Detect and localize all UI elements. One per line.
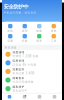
staticText: 深度清理: [12, 51, 24, 54]
button[interactable]: 体检: [3, 24, 17, 32]
staticText: 今日已完成扫描: [12, 80, 33, 84]
staticText: 本月已用 3.4GB: [12, 71, 34, 75]
staticText: 手机运行流畅，状态良好: [4, 11, 37, 14]
staticText: 病毒查杀: [12, 77, 24, 80]
button[interactable]: 深度清理: [3, 50, 61, 59]
staticText: 管家: [6, 99, 12, 100]
button[interactable]: 清理: [17, 24, 32, 32]
button[interactable]: 拦截: [17, 34, 32, 42]
staticText: 隐私保护: [12, 85, 24, 88]
button[interactable]: 我的: [47, 95, 62, 100]
staticText: 推荐功能: [4, 46, 16, 49]
button[interactable]: 管家: [2, 95, 17, 100]
staticText: 已安装 86 个应用: [12, 63, 36, 66]
button[interactable]: 流量监控: [3, 67, 61, 76]
button[interactable]: 加速: [32, 24, 46, 32]
staticText: 工具: [51, 39, 57, 42]
staticText: 省电: [51, 29, 57, 32]
button[interactable]: 工具: [46, 34, 61, 42]
button[interactable]: 省电: [46, 24, 61, 32]
button[interactable]: 病毒查杀: [3, 76, 61, 84]
staticText: 安全防护中: [4, 3, 29, 10]
button[interactable]: 工具: [32, 95, 47, 100]
button[interactable]: 查杀: [32, 34, 46, 42]
button[interactable]: 应用管理: [3, 59, 61, 67]
staticText: 体检: [7, 29, 13, 32]
staticText: 拦截: [22, 39, 28, 42]
staticText: 流量: [7, 39, 13, 42]
staticText: 加速: [36, 29, 42, 32]
staticText: 应用管理: [12, 59, 24, 62]
staticText: 安全运行中: [12, 89, 27, 92]
button[interactable]: 隐私保护: [3, 84, 61, 93]
staticText: 流量监控: [12, 68, 24, 71]
staticText: 清理: [22, 29, 28, 32]
staticText: 查杀: [36, 39, 42, 42]
button[interactable]: 流量: [3, 34, 17, 42]
button[interactable]: 发现: [17, 95, 32, 100]
staticText: 可清理 1.2GB 垃圾: [12, 54, 38, 58]
